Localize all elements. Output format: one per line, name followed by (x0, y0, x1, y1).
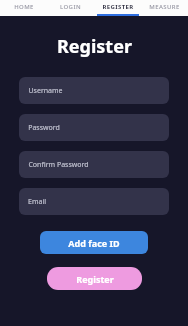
button[interactable]: Password (19, 114, 169, 141)
button[interactable]: REGISTER (94, 0, 141, 16)
button[interactable]: Confirm Password (19, 151, 169, 178)
staticText: MEASURE (149, 3, 180, 11)
button[interactable]: Add face ID (40, 231, 148, 254)
staticText: Register (76, 273, 114, 285)
staticText: Confirm Password (28, 160, 89, 170)
button[interactable]: Username (19, 77, 169, 104)
button[interactable]: Register (47, 267, 142, 290)
button[interactable]: HOME (0, 0, 47, 16)
staticText: HOME (14, 3, 34, 11)
staticText: Username (28, 86, 63, 96)
staticText: Password (28, 123, 60, 133)
staticText: REGISTER (102, 3, 134, 11)
staticText: Add face ID (68, 237, 120, 249)
button[interactable]: Email (19, 188, 169, 215)
staticText: Email (28, 197, 46, 207)
button[interactable]: MEASURE (141, 0, 188, 16)
staticText: Register (57, 34, 132, 59)
button[interactable]: LOGIN (47, 0, 94, 16)
staticText: LOGIN (60, 3, 81, 11)
